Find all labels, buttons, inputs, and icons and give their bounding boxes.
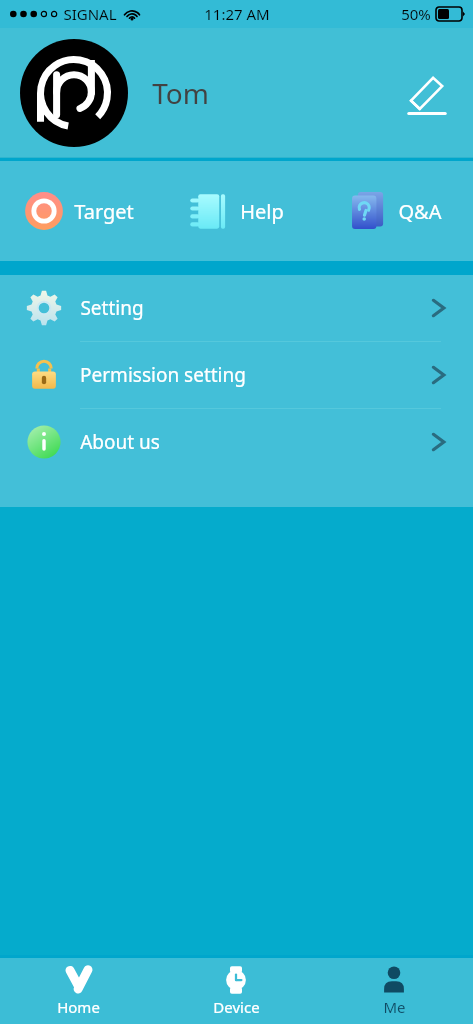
staticText: 50%	[401, 4, 431, 24]
button[interactable]: Edit profile	[401, 67, 453, 119]
button[interactable]: Device	[157, 958, 315, 1024]
staticText: Home	[57, 997, 100, 1017]
staticText: About us	[80, 429, 160, 455]
button[interactable]: Q&A	[315, 161, 473, 261]
staticText: Device	[213, 997, 260, 1017]
staticText: 11:27 AM	[204, 4, 270, 24]
staticText: Permission setting	[80, 362, 246, 388]
staticText: Tom	[152, 74, 209, 112]
button[interactable]: Permission setting	[0, 342, 473, 409]
button[interactable]: Setting	[0, 275, 473, 342]
staticText: Target	[74, 198, 134, 225]
button[interactable]: Me	[315, 958, 473, 1024]
staticText: Q&A	[398, 198, 442, 225]
staticText: Me	[383, 997, 406, 1017]
staticText: SIGNAL	[63, 4, 117, 24]
button[interactable]: About us	[0, 409, 473, 475]
staticText: Help	[240, 198, 284, 225]
button[interactable]: Help	[157, 161, 315, 261]
button[interactable]: Home	[0, 958, 157, 1024]
button[interactable]	[20, 39, 128, 147]
button[interactable]: Target	[0, 161, 157, 261]
staticText: Setting	[80, 295, 144, 321]
